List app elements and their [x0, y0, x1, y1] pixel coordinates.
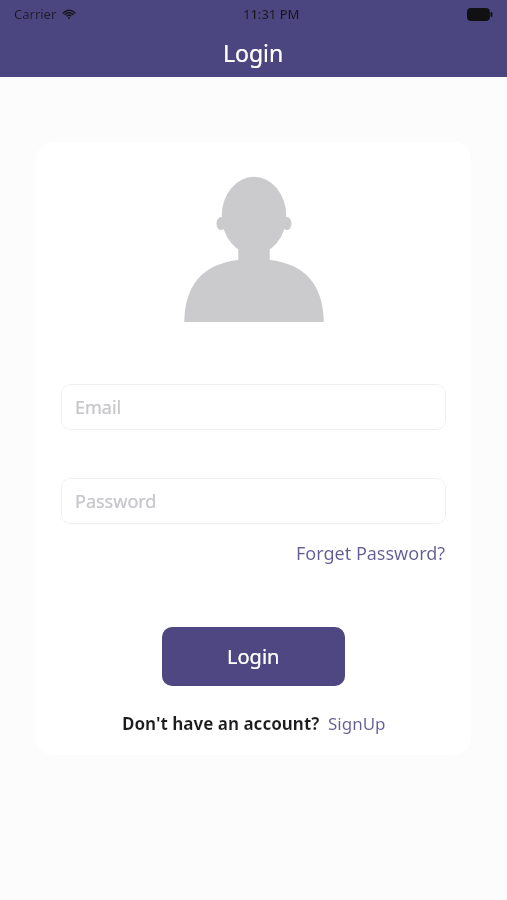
button[interactable]: Forget Password? [296, 538, 446, 569]
button[interactable]: Password [61, 478, 446, 524]
button[interactable]: Email [61, 384, 446, 430]
button[interactable]: SignUp [328, 712, 386, 735]
staticText: Email [75, 395, 122, 420]
staticText: Login [223, 37, 284, 68]
staticText: 11:31 PM [243, 5, 300, 23]
staticText: Forget Password? [296, 541, 446, 566]
button[interactable]: Login [162, 627, 345, 686]
staticText: Carrier [14, 5, 57, 23]
staticText: Login [227, 643, 280, 670]
staticText: SignUp [328, 712, 386, 735]
staticText: Don't have an account? [122, 712, 320, 735]
staticText: Password [75, 489, 157, 514]
